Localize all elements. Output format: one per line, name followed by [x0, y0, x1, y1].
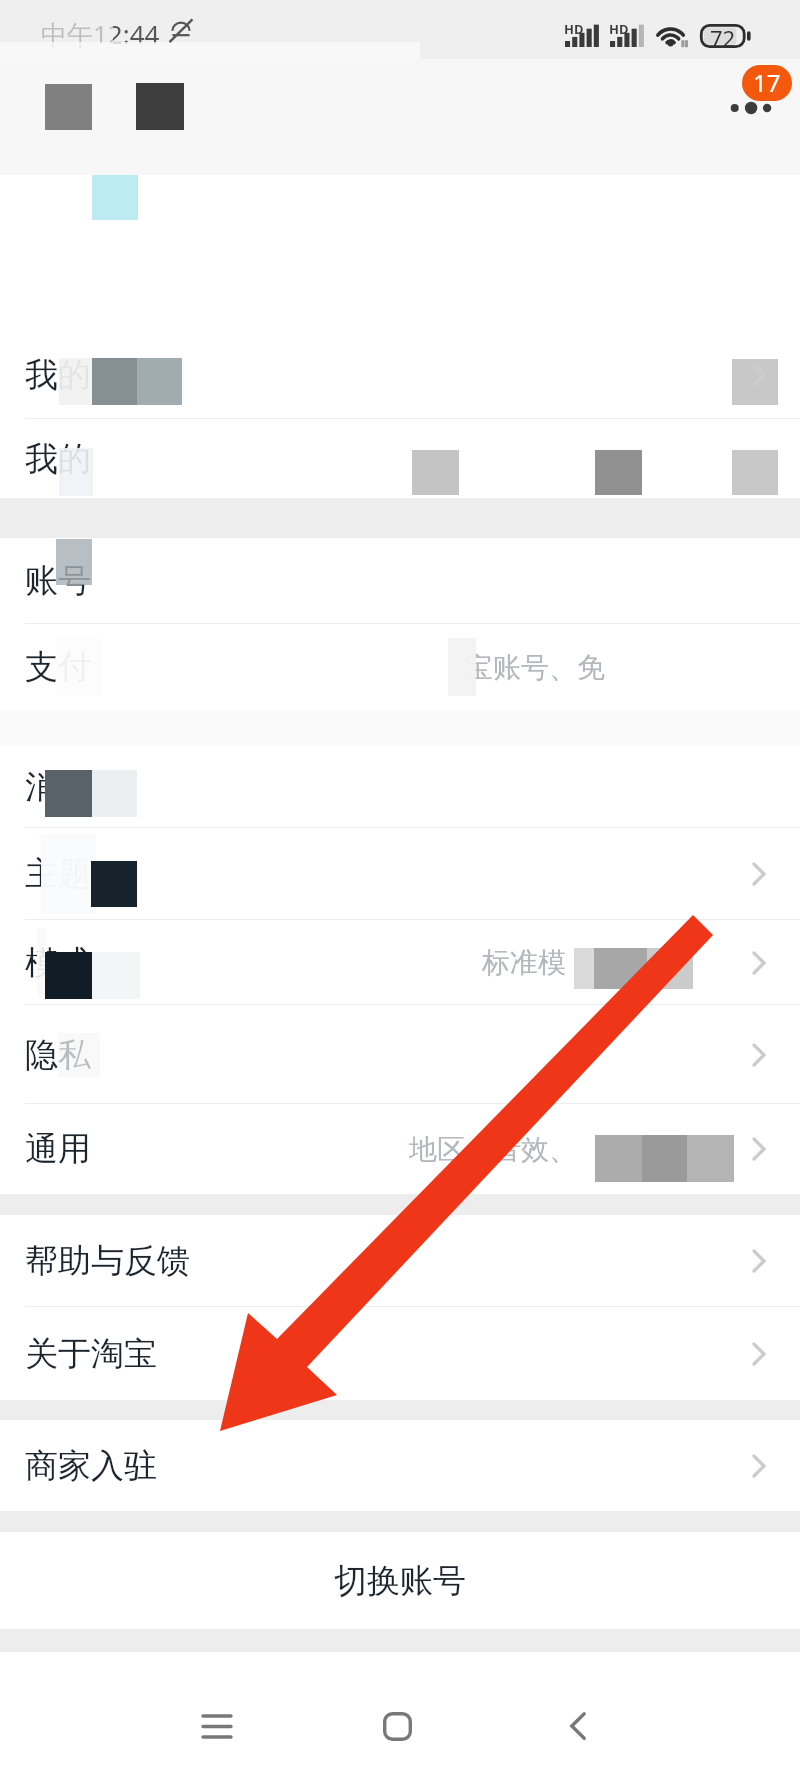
staticText: 模式: [25, 942, 91, 984]
button[interactable]: Recent apps: [172, 1681, 262, 1771]
button[interactable]: 通用: [0, 1104, 800, 1194]
button[interactable]: 支付: [0, 624, 800, 710]
staticText: 标准模: [482, 945, 566, 980]
staticText: 我的: [25, 438, 91, 480]
button[interactable]: Back: [533, 1681, 623, 1771]
staticText: 72: [710, 23, 736, 47]
button[interactable]: 账号: [0, 538, 800, 624]
button[interactable]: 主题: [0, 828, 800, 920]
staticText: 我的: [25, 354, 91, 396]
button[interactable]: 模式: [0, 920, 800, 1005]
button[interactable]: 我的: [0, 330, 800, 419]
staticText: 支付: [25, 646, 91, 688]
button[interactable]: 切换账号: [0, 1532, 800, 1629]
button[interactable]: 商家入驻: [0, 1420, 800, 1511]
staticText: 宝账号、免: [465, 650, 605, 685]
staticText: 地区、音效、: [409, 1132, 577, 1167]
button[interactable]: 关于淘宝: [0, 1307, 800, 1400]
staticText: HD: [609, 20, 629, 38]
staticText: 商家入驻: [25, 1445, 157, 1487]
staticText: 中午12:44: [41, 16, 160, 52]
staticText: 切换账号: [334, 1560, 466, 1602]
staticText: 通用: [25, 1128, 91, 1170]
button[interactable]: 消息: [0, 745, 800, 828]
staticText: 账号: [25, 560, 91, 602]
staticText: 关于淘宝: [25, 1333, 157, 1375]
button[interactable]: 帮助与反馈: [0, 1215, 800, 1307]
button[interactable]: Home: [352, 1681, 442, 1771]
staticText: 帮助与反馈: [25, 1240, 190, 1282]
button[interactable]: More options: [706, 81, 794, 141]
staticText: 隐私: [25, 1034, 91, 1076]
button[interactable]: [0, 175, 800, 330]
staticText: 17: [753, 66, 781, 99]
button[interactable]: 我的: [0, 419, 800, 498]
staticText: 主题: [25, 853, 91, 895]
staticText: HD: [564, 20, 584, 38]
button[interactable]: 隐私: [0, 1005, 800, 1104]
staticText: 消息: [25, 766, 91, 808]
